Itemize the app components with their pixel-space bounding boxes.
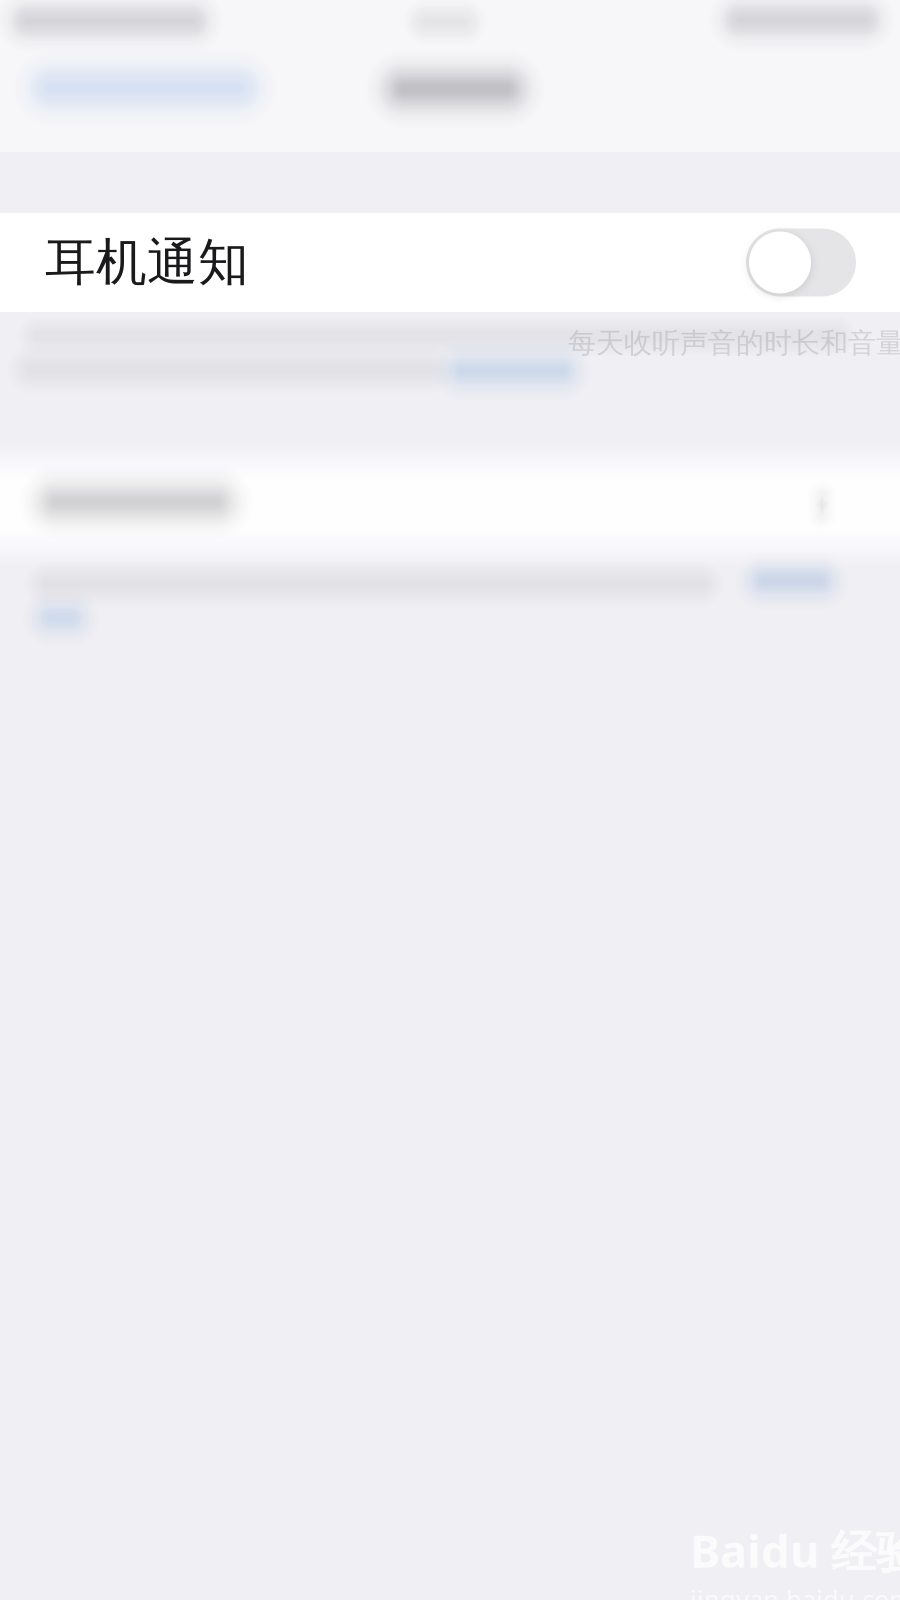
staticText: jingyan.baidu.com (690, 1582, 900, 1600)
button[interactable]: 耳机通知 (0, 213, 900, 312)
staticText: 耳机通知 (45, 231, 249, 294)
staticText: Baidu 经验 (690, 1520, 900, 1580)
staticText: 每天收听声音的时长和音量 (568, 326, 900, 360)
